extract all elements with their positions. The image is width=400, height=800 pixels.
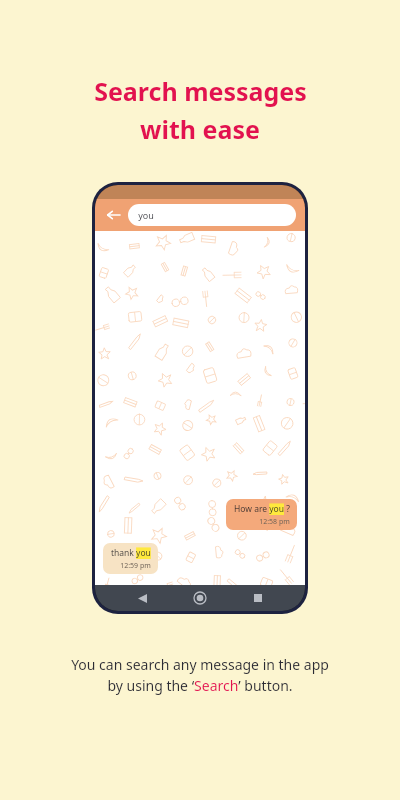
button[interactable]: Home [189,587,211,609]
staticText: 12:59 pm [120,561,151,571]
button[interactable]: thank you [103,543,158,574]
button[interactable]: How are you ? [226,499,297,530]
staticText: you [138,209,154,221]
staticText: by using the ‘Search’ button. [107,676,293,695]
button[interactable]: you [128,204,296,226]
button[interactable]: Back [131,587,153,609]
staticText: You can search any message in the app [71,655,329,674]
button[interactable]: Recent apps [247,587,269,609]
staticText: thank you [111,547,151,559]
staticText: Search messages [94,74,307,108]
button[interactable]: Back [103,205,123,225]
staticText: 12:58 pm [259,517,290,527]
staticText: How are you ? [234,503,290,515]
staticText: with ease [140,112,260,146]
